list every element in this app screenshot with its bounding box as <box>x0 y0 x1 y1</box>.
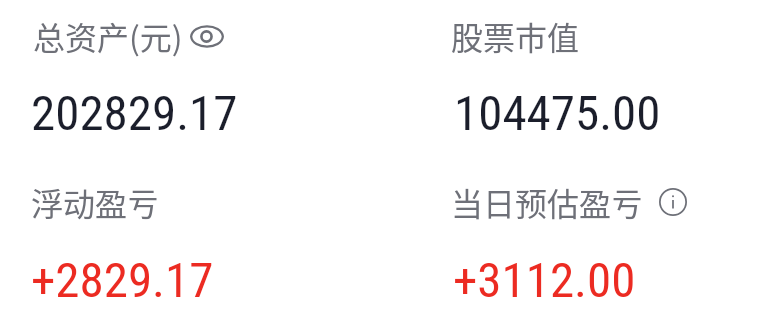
button[interactable]: 当日预估盈亏 <box>451 179 687 225</box>
staticText: 总资产(元) <box>33 13 183 59</box>
other: Toggle balance visibility <box>190 25 224 48</box>
button[interactable]: 浮动盈亏 <box>31 179 160 225</box>
button[interactable]: 股票市值 <box>451 13 580 59</box>
staticText: 当日预估盈亏 <box>451 179 644 225</box>
staticText: +3112.00 <box>453 252 636 309</box>
staticText: +2829.17 <box>31 252 214 309</box>
staticText: 202829.17 <box>31 85 238 142</box>
staticText: 104475.00 <box>454 85 661 142</box>
button[interactable]: 总资产(元) <box>33 13 224 59</box>
other: About estimated profit and loss <box>659 188 687 216</box>
